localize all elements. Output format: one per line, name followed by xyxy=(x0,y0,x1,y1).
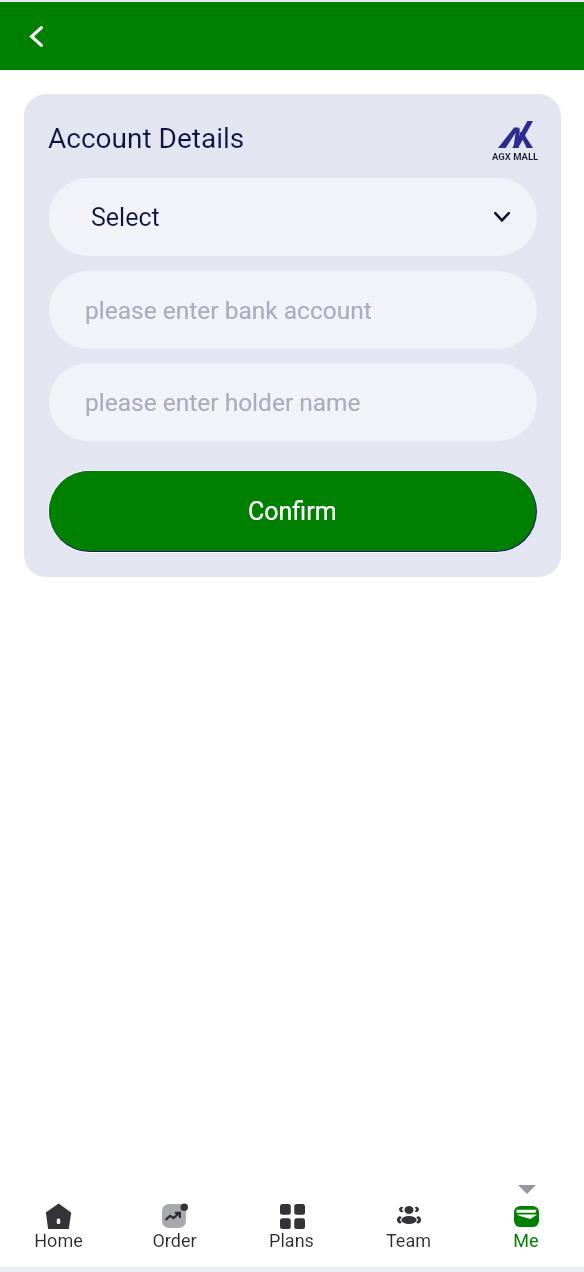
button[interactable]: Me xyxy=(467,1168,584,1267)
button[interactable]: Team xyxy=(350,1168,467,1267)
button[interactable]: please enter bank account xyxy=(49,271,537,349)
staticText: Me xyxy=(513,1230,539,1251)
button[interactable]: Confirm xyxy=(49,471,536,551)
button[interactable]: Back xyxy=(10,10,62,62)
button[interactable]: please enter holder name xyxy=(49,363,537,441)
staticText: please enter holder name xyxy=(85,388,361,417)
staticText: Confirm xyxy=(248,497,337,526)
staticText: Home xyxy=(34,1230,83,1251)
staticText: Plans xyxy=(269,1230,314,1251)
button[interactable]: Select xyxy=(49,178,537,256)
button[interactable]: Plans xyxy=(233,1168,350,1267)
staticText: Team xyxy=(386,1230,431,1251)
staticText: Select xyxy=(91,203,160,232)
button[interactable]: Home xyxy=(0,1168,116,1267)
staticText: Account Details xyxy=(48,122,245,155)
staticText: AGX MALL xyxy=(492,151,539,162)
staticText: Order xyxy=(152,1230,197,1251)
button[interactable]: Order xyxy=(116,1168,233,1267)
staticText: please enter bank account xyxy=(85,296,372,325)
